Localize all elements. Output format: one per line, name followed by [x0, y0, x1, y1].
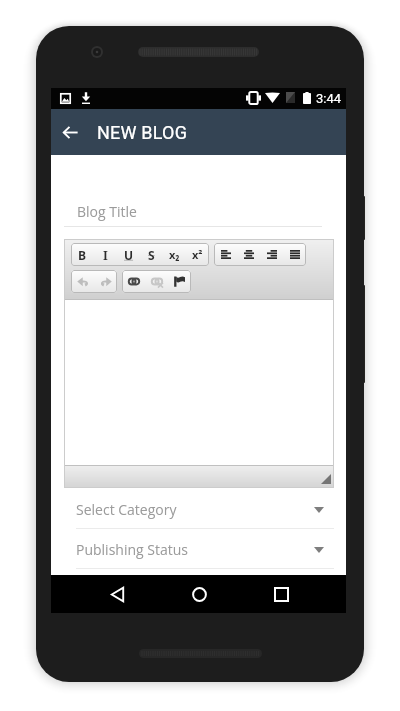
staticText: Publishing Status — [76, 540, 188, 559]
button[interactable]: Publishing Status — [64, 532, 335, 572]
button[interactable]: Navigate up — [47, 109, 93, 155]
button[interactable]: link — [122, 270, 145, 293]
staticText: S — [148, 247, 155, 263]
staticText: B — [78, 247, 87, 263]
button[interactable]: S — [140, 243, 163, 266]
staticText: U — [124, 247, 134, 263]
button[interactable]: x^2 — [186, 243, 209, 266]
button[interactable]: al — [214, 243, 237, 266]
button[interactable]: B — [71, 243, 94, 266]
staticText: Select Category — [76, 500, 177, 519]
button[interactable]: I — [94, 243, 117, 266]
button[interactable]: flag — [168, 270, 191, 293]
button[interactable]: redo — [94, 270, 117, 293]
button[interactable]: Back — [97, 575, 137, 613]
button[interactable]: aj — [283, 243, 306, 266]
button[interactable]: ar — [260, 243, 283, 266]
staticText: x₂ — [169, 247, 180, 262]
staticText: x² — [192, 247, 203, 262]
staticText: I — [103, 247, 108, 263]
button[interactable]: Blog Title — [64, 188, 335, 226]
button[interactable]: undo — [71, 270, 94, 293]
button[interactable]: Home — [179, 575, 219, 613]
button[interactable]: Select Category — [64, 492, 335, 532]
staticText: Blog Title — [77, 202, 137, 221]
button[interactable]: x2 — [163, 243, 186, 266]
button[interactable]: ac — [237, 243, 260, 266]
button[interactable]: U — [117, 243, 140, 266]
button[interactable]: Recent apps — [261, 575, 301, 613]
staticText: NEW BLOG — [97, 122, 188, 143]
staticText: 3:44 — [316, 91, 342, 106]
button[interactable]: unlink — [145, 270, 168, 293]
